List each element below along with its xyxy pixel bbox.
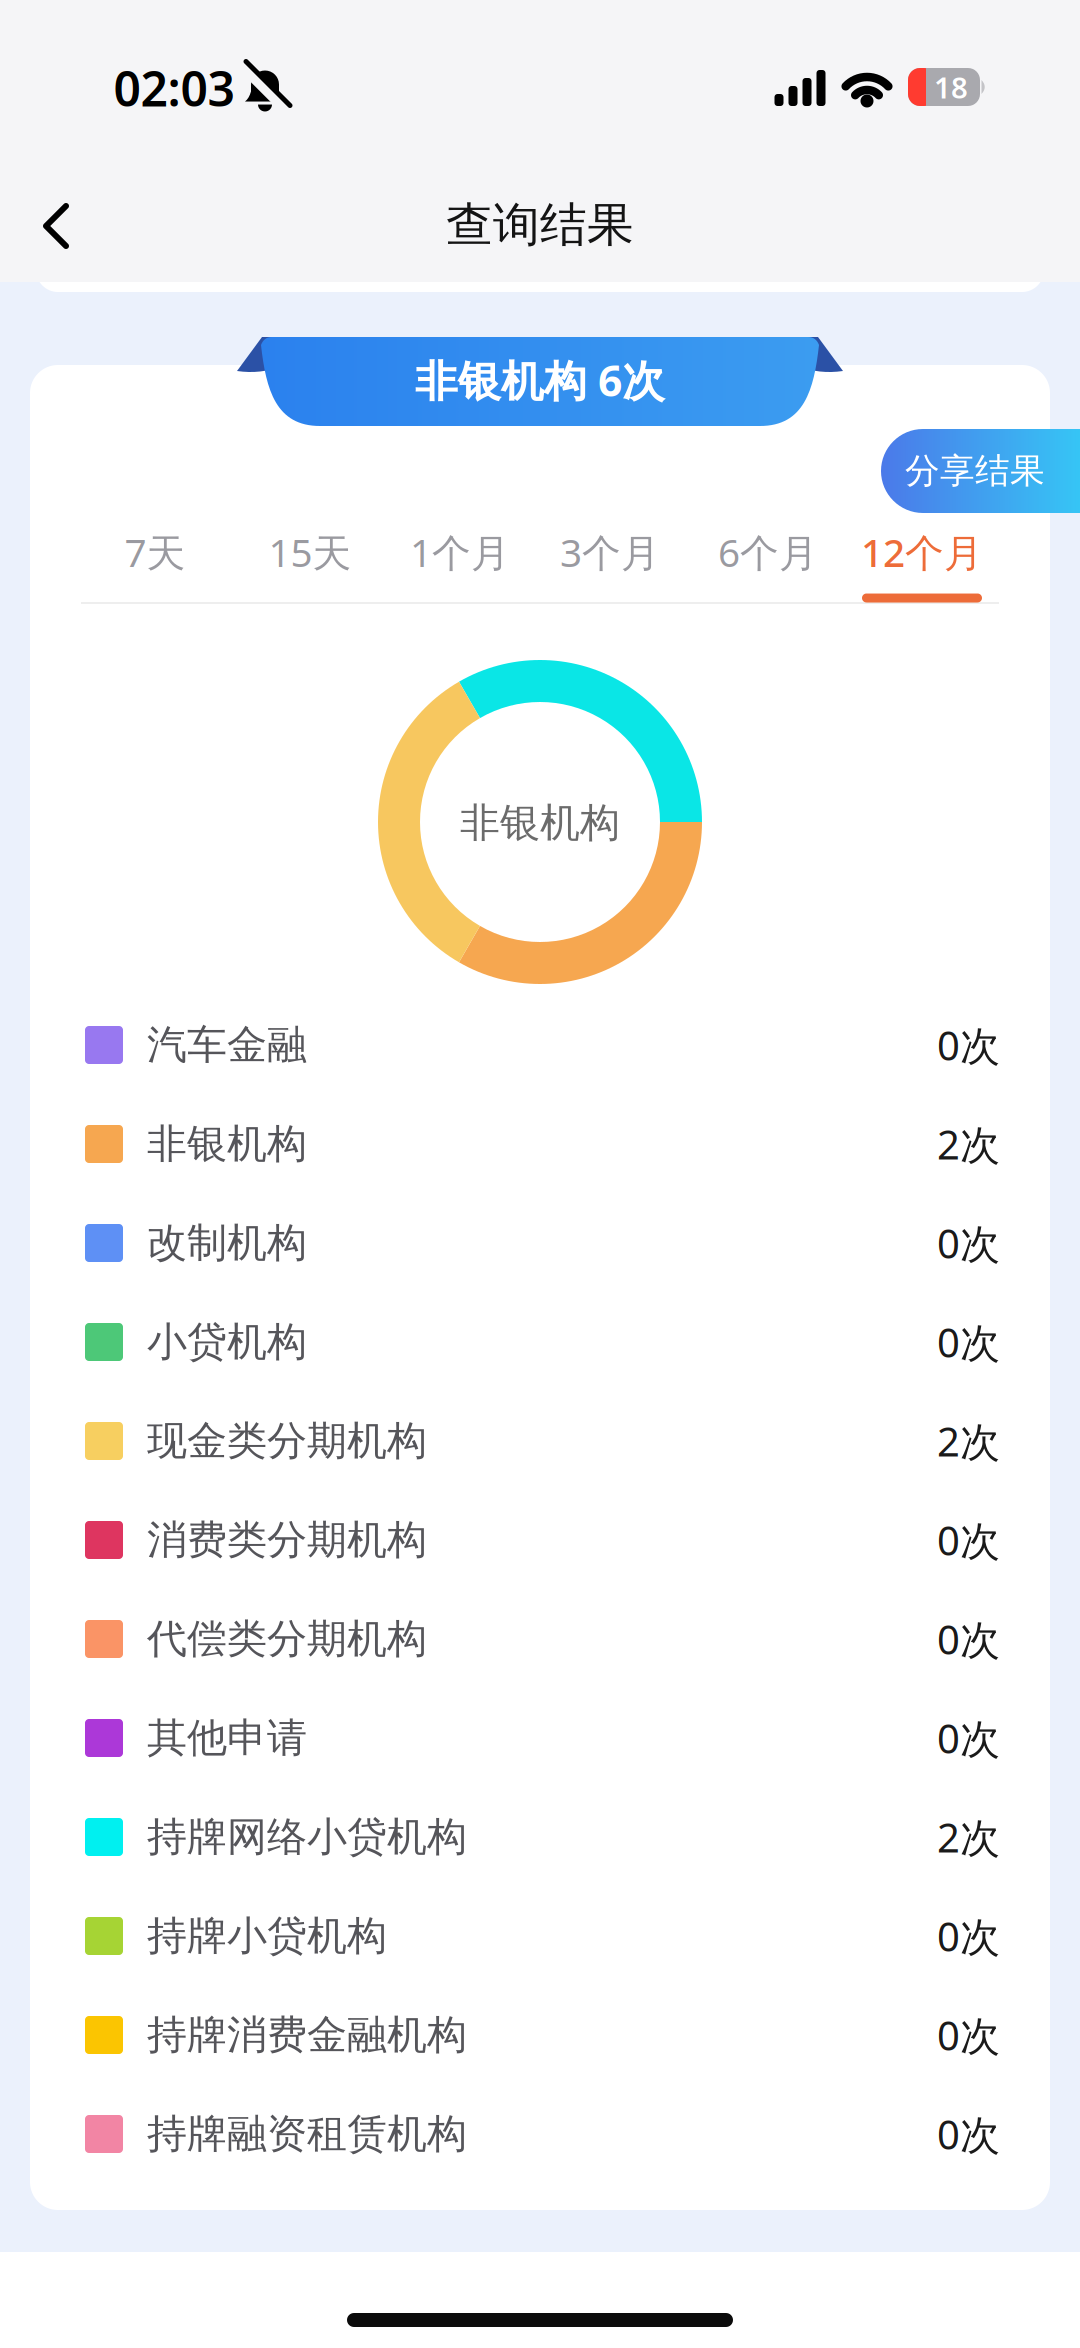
staticText: 0次 bbox=[937, 2107, 1000, 2160]
button[interactable]: 15天 bbox=[268, 512, 351, 592]
staticText: 18 bbox=[934, 67, 968, 106]
staticText: 持牌消费金融机构 bbox=[147, 2010, 467, 2059]
staticText: 12个月 bbox=[861, 526, 983, 578]
staticText: 汽车金融 bbox=[147, 1020, 307, 1069]
staticText: 非银机构 6次 bbox=[415, 352, 665, 408]
staticText: 持牌融资租赁机构 bbox=[147, 2109, 467, 2158]
button[interactable]: 7天 bbox=[124, 512, 185, 592]
button[interactable]: 12个月 bbox=[861, 512, 983, 592]
staticText: 非银机构 bbox=[147, 1119, 307, 1168]
staticText: 0次 bbox=[937, 1612, 1000, 1665]
staticText: 3个月 bbox=[560, 526, 660, 578]
staticText: 持牌小贷机构 bbox=[147, 1911, 387, 1960]
staticText: 0次 bbox=[937, 1909, 1000, 1962]
staticText: 0次 bbox=[937, 1216, 1000, 1269]
staticText: 0次 bbox=[937, 1513, 1000, 1566]
staticText: 2次 bbox=[937, 1810, 1000, 1863]
staticText: 0次 bbox=[937, 1315, 1000, 1368]
staticText: 15天 bbox=[268, 526, 351, 578]
staticText: 其他申请 bbox=[147, 1713, 307, 1762]
staticText: 代偿类分期机构 bbox=[147, 1614, 427, 1663]
staticText: 非银机构 bbox=[460, 798, 620, 847]
staticText: 持牌网络小贷机构 bbox=[147, 1812, 467, 1861]
button[interactable]: Back bbox=[36, 200, 88, 252]
button[interactable]: 1个月 bbox=[410, 512, 510, 592]
staticText: 小贷机构 bbox=[147, 1317, 307, 1366]
staticText: 7天 bbox=[124, 526, 185, 578]
staticText: 2次 bbox=[937, 1414, 1000, 1467]
staticText: 查询结果 bbox=[446, 196, 634, 254]
staticText: 改制机构 bbox=[147, 1218, 307, 1267]
button[interactable]: 分享结果 bbox=[881, 429, 1080, 513]
staticText: 0次 bbox=[937, 1018, 1000, 1071]
staticText: 分享结果 bbox=[905, 450, 1045, 492]
staticText: 6个月 bbox=[718, 526, 818, 578]
staticText: 1个月 bbox=[410, 526, 510, 578]
staticText: 0次 bbox=[937, 2008, 1000, 2061]
button[interactable]: 6个月 bbox=[718, 512, 818, 592]
staticText: 0次 bbox=[937, 1711, 1000, 1764]
staticText: 消费类分期机构 bbox=[147, 1515, 427, 1564]
button[interactable]: 3个月 bbox=[560, 512, 660, 592]
staticText: 2次 bbox=[937, 1117, 1000, 1170]
staticText: 02:03 bbox=[113, 56, 234, 120]
staticText: 现金类分期机构 bbox=[147, 1416, 427, 1465]
